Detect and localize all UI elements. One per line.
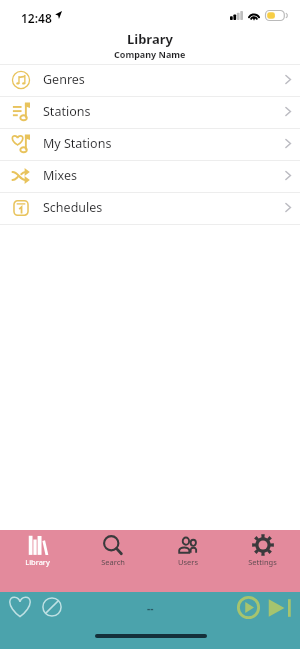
staticText: Schedules	[43, 199, 103, 216]
staticText: Genres	[43, 71, 85, 88]
button[interactable]: Library	[0, 530, 75, 592]
button[interactable]: Block	[42, 597, 62, 617]
button[interactable]: Favorite	[9, 596, 31, 617]
button[interactable]: Play	[237, 596, 260, 619]
staticText: Search	[101, 557, 125, 567]
staticText: Users	[178, 557, 198, 567]
button[interactable]: Users	[150, 530, 225, 592]
button[interactable]: My Stations	[0, 129, 300, 160]
button[interactable]: Settings	[225, 530, 300, 592]
staticText: Settings	[248, 557, 277, 567]
staticText: My Stations	[43, 135, 112, 152]
staticText: 12:48	[21, 10, 52, 26]
staticText: Mixes	[43, 167, 77, 184]
button[interactable]: Schedules	[0, 193, 300, 224]
staticText: Company Name	[114, 48, 186, 60]
staticText: Library	[25, 557, 50, 567]
button[interactable]: Mixes	[0, 161, 300, 192]
button[interactable]: Genres	[0, 65, 300, 96]
button[interactable]: Search	[75, 530, 150, 592]
button[interactable]: Stations	[0, 97, 300, 128]
staticText: --	[147, 601, 154, 615]
button[interactable]: Next	[268, 598, 293, 618]
staticText: Stations	[43, 103, 91, 120]
staticText: Library	[127, 30, 173, 48]
